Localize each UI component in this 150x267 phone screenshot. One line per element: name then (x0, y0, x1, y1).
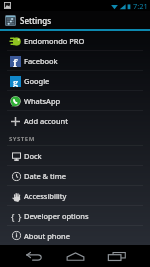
staticText: f (13, 56, 18, 67)
staticText: Facebook (24, 56, 58, 66)
button[interactable]: Back (15, 245, 52, 267)
button[interactable]: { } (0, 206, 150, 226)
staticText: Endomondo PRO (24, 36, 85, 46)
staticText: SYSTEM (9, 135, 35, 143)
staticText: g (13, 76, 19, 87)
staticText: Dock (24, 151, 42, 161)
staticText: Google (24, 76, 50, 86)
button[interactable]: About phone (0, 226, 150, 245)
staticText: About phone (24, 231, 70, 241)
staticText: Accessibility (24, 191, 67, 201)
button[interactable]: Home (57, 245, 94, 267)
button[interactable]: Accessibility (0, 186, 150, 206)
staticText: 7:21 (133, 1, 148, 11)
button[interactable]: g (0, 71, 150, 91)
staticText: { } (11, 211, 22, 222)
button[interactable]: WhatsApp (0, 91, 150, 111)
button[interactable]: Add account (0, 111, 150, 131)
button[interactable]: Date & time (0, 166, 150, 186)
button[interactable]: Settings (0, 11, 150, 29)
staticText: WhatsApp (24, 96, 61, 106)
staticText: Developer options (24, 211, 89, 221)
button[interactable]: Recent apps (98, 245, 135, 267)
staticText: Add account (24, 116, 68, 126)
button[interactable]: f (0, 51, 150, 71)
button[interactable]: Dock (0, 146, 150, 166)
button[interactable]: Endomondo PRO (0, 31, 150, 51)
staticText: Settings (20, 15, 52, 26)
staticText: Date & time (24, 171, 66, 181)
